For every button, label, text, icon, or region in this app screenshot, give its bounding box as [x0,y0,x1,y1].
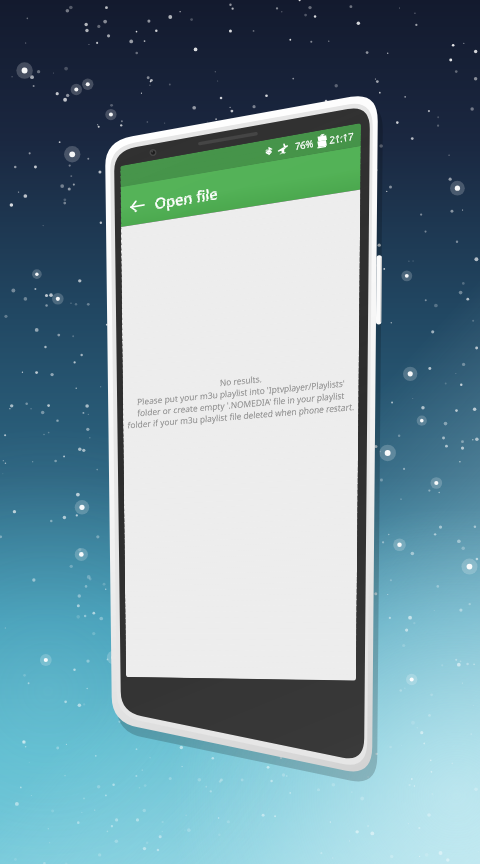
button[interactable] [122,395,358,485]
button[interactable]: Navigate up [117,200,147,226]
button[interactable] [117,193,360,235]
